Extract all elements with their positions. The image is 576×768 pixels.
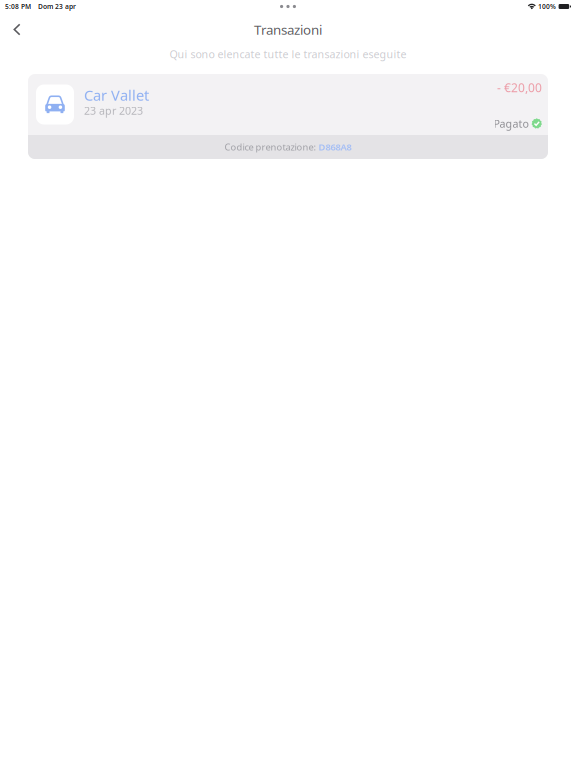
staticText: 23 apr 2023 <box>84 103 143 118</box>
button[interactable]: Car Vallet <box>28 74 548 159</box>
staticText: Pagato <box>493 116 528 131</box>
staticText: Codice prenotazione: <box>224 141 318 153</box>
staticText: Transazioni <box>254 21 322 38</box>
staticText: Car Vallet <box>84 85 149 105</box>
staticText: 100% <box>538 2 556 11</box>
staticText: - €20,00 <box>497 79 542 95</box>
button[interactable]: Back <box>0 13 34 46</box>
staticText: Qui sono elencate tutte le transazioni e… <box>169 47 406 61</box>
staticText: Dom 23 apr <box>38 2 76 11</box>
staticText: 5:08 PM <box>5 2 31 11</box>
staticText: D868A8 <box>318 141 351 153</box>
